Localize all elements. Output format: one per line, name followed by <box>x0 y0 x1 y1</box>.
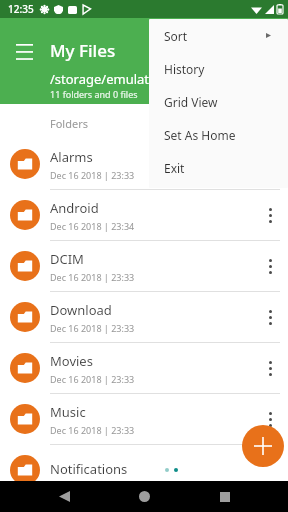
staticText: Music <box>50 403 86 421</box>
staticText: History <box>164 61 205 77</box>
button[interactable]: More options <box>252 241 288 291</box>
staticText: Sort <box>164 28 188 44</box>
staticText: 11 folders and 0 files <box>50 88 138 100</box>
staticText: 12:35 <box>8 2 34 16</box>
staticText: Movies <box>50 352 93 370</box>
staticText: /storage/emulated/0 <box>50 70 177 88</box>
staticText: Notifications <box>50 460 128 478</box>
staticText: Android <box>50 199 99 217</box>
button[interactable]: History <box>149 52 288 85</box>
button[interactable]: Set As Home <box>149 118 288 151</box>
staticText: Download <box>50 301 112 319</box>
button[interactable]: More options <box>252 190 288 240</box>
staticText: Folders <box>50 116 88 131</box>
staticText: Dec 16 2018 | 23:33 <box>50 322 135 334</box>
button[interactable]: Grid View <box>149 85 288 118</box>
button[interactable]: Movies <box>0 343 288 394</box>
button[interactable]: More options <box>252 343 288 393</box>
staticText: Exit <box>164 160 185 176</box>
button[interactable]: Back <box>47 481 81 512</box>
staticText: Dec 16 2018 | 23:33 <box>50 169 135 181</box>
button[interactable]: Download <box>0 292 288 343</box>
button[interactable]: Recents <box>208 481 242 512</box>
staticText: Dec 16 2018 | 23:33 <box>50 271 135 283</box>
button[interactable]: DCIM <box>0 241 288 292</box>
staticText: Alarms <box>50 148 93 166</box>
staticText: My Files <box>50 39 116 62</box>
staticText: Dec 16 2018 | 23:34 <box>50 220 135 232</box>
button[interactable]: Add <box>242 425 284 467</box>
button[interactable]: More options <box>252 394 288 444</box>
button[interactable]: Android <box>0 190 288 241</box>
button[interactable]: Sort <box>149 19 288 52</box>
staticText: Dec 16 2018 | 23:33 <box>50 373 135 385</box>
button[interactable]: Menu <box>10 38 38 66</box>
button[interactable]: Home <box>127 481 161 512</box>
staticText: Dec 16 2018 | 23:33 <box>50 424 135 436</box>
button[interactable]: Exit <box>149 151 288 184</box>
staticText: Set As Home <box>164 127 236 143</box>
button[interactable]: Notifications <box>0 445 288 495</box>
button[interactable]: Music <box>0 394 288 445</box>
staticText: Grid View <box>164 94 218 110</box>
button[interactable]: More options <box>252 292 288 342</box>
staticText: DCIM <box>50 250 84 268</box>
button[interactable]: Alarms <box>0 139 288 190</box>
